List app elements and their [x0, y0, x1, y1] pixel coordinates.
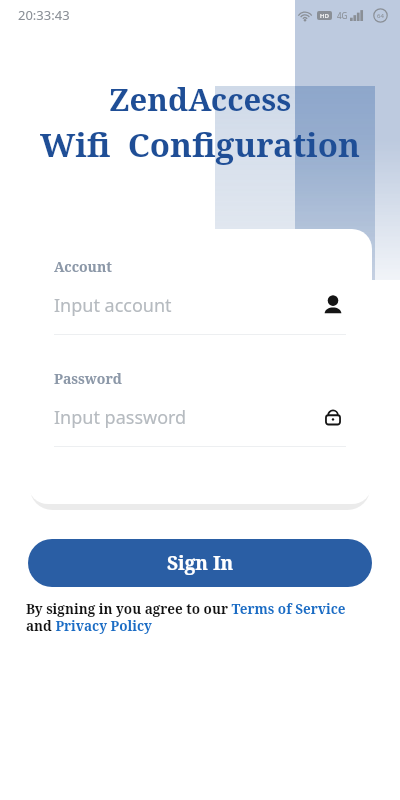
button[interactable]: Input account — [54, 288, 346, 322]
staticText: 20:33:43 — [18, 6, 70, 24]
other: Account — [320, 292, 346, 318]
button[interactable]: Input password — [54, 400, 346, 434]
other: Password — [320, 404, 346, 430]
button[interactable]: Sign In — [28, 539, 372, 587]
staticText: By signing in you agree to our Terms of … — [26, 600, 374, 635]
staticText: ZendAccess — [0, 78, 400, 120]
staticText: Sign In — [167, 550, 234, 576]
staticText: Password — [54, 369, 122, 388]
staticText: Wifi Configuration — [0, 122, 400, 167]
staticText: Account — [54, 257, 112, 276]
button[interactable]: By signing in you agree to our Terms of … — [26, 600, 374, 635]
staticText: Input account — [54, 293, 320, 318]
staticText: 4G — [337, 10, 348, 21]
staticText: HD — [320, 12, 329, 20]
staticText: 64 — [377, 12, 384, 20]
staticText: Input password — [54, 405, 320, 430]
